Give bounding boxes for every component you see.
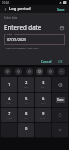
button[interactable]: 0 (18, 123, 34, 137)
staticText: 3 (42, 80, 45, 86)
button[interactable]: Cancel (39, 58, 54, 64)
staticText: + (26, 132, 28, 135)
button[interactable]: Save (55, 6, 67, 13)
button[interactable]: OK (56, 58, 65, 64)
button[interactable]: Emoji (15, 68, 22, 75)
staticText: 6 (42, 96, 45, 102)
button[interactable]: Date (4, 34, 65, 45)
staticText: Log period (9, 6, 31, 12)
button[interactable]: Sticker (36, 68, 43, 75)
button[interactable]: 3 (35, 77, 51, 92)
staticText: Done (57, 98, 64, 102)
button[interactable]: 4 (1, 93, 17, 107)
staticText: TUV (24, 117, 28, 120)
button[interactable]: 5 (18, 93, 34, 107)
staticText: 2 (25, 80, 28, 86)
staticText: Cancel (41, 59, 52, 63)
button[interactable]: Backspace (52, 77, 68, 92)
button[interactable]: Move cursor (52, 108, 68, 122)
staticText: 0 (25, 126, 28, 132)
staticText: 5 (25, 96, 28, 102)
staticText: Date (7, 34, 13, 36)
staticText: GHI (7, 102, 11, 105)
staticText: DEF (41, 86, 45, 89)
button[interactable]: Done (52, 93, 68, 107)
staticText: 07/31/2025 (7, 37, 27, 42)
staticText: MNO (41, 102, 46, 105)
staticText: Select date (4, 16, 18, 20)
staticText: 1 (8, 82, 11, 88)
staticText: 8 (25, 111, 28, 117)
button[interactable]: 7 (1, 108, 17, 122)
staticText: ABC (24, 86, 28, 89)
button[interactable]: 8 (18, 108, 34, 122)
staticText: JKL (25, 102, 28, 105)
staticText: 4 (8, 96, 11, 102)
button[interactable]: Mic (47, 68, 54, 75)
button[interactable]: Clipboard (4, 68, 11, 75)
staticText: Date not allowed: 7 Dec 2025 (6, 46, 39, 49)
staticText: Save (57, 7, 65, 12)
button[interactable]: 2 (18, 77, 34, 92)
staticText: WXYZ (40, 117, 46, 120)
staticText: 9 (42, 111, 45, 117)
button[interactable]: Settings (26, 68, 33, 75)
staticText: 10:04 (2, 1, 9, 5)
staticText: PQRS (7, 117, 12, 120)
button[interactable]: 9 (35, 108, 51, 122)
button[interactable]: More (58, 68, 65, 75)
staticText: 7 (8, 111, 11, 117)
staticText: OK (58, 59, 63, 63)
button[interactable]: 1 (1, 77, 17, 92)
button[interactable]: Back (2, 6, 8, 12)
button[interactable]: Switch to calendar input mode (58, 24, 65, 31)
button[interactable]: Hide keyboard (52, 123, 68, 137)
staticText: Entered date (4, 23, 42, 31)
button[interactable]: 6 (35, 93, 51, 107)
